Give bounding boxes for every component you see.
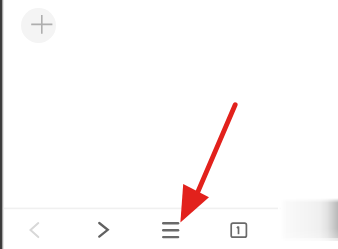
button[interactable]: Back — [15, 211, 53, 249]
button[interactable]: Menu — [151, 211, 189, 249]
button[interactable]: Forward — [84, 211, 122, 249]
button[interactable]: New tab — [21, 8, 56, 43]
button[interactable]: Tabs — [219, 211, 257, 249]
